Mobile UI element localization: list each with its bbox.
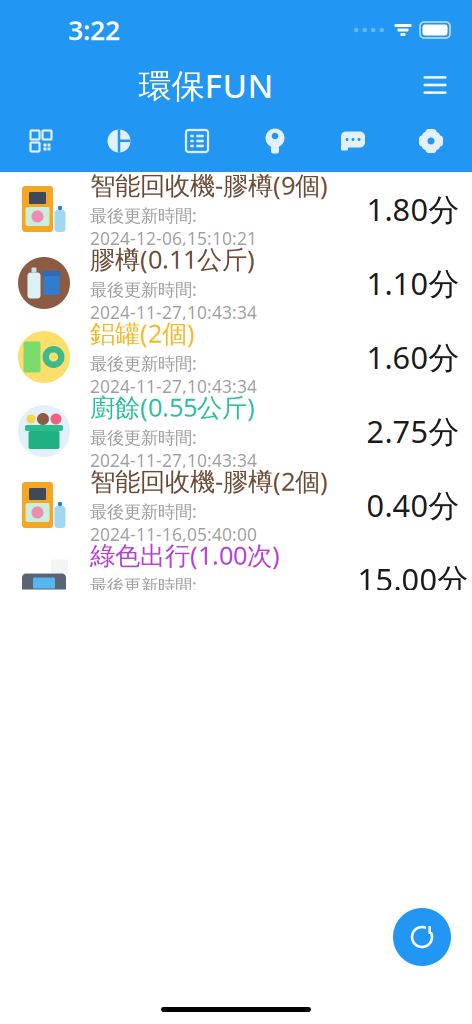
staticText: 綠色出行(1.00次) <box>90 538 280 572</box>
staticText: 鋁罐(2個) <box>90 316 195 350</box>
staticText: 3:22 <box>68 12 120 48</box>
staticText: 廚餘(0.55公斤) <box>90 390 255 424</box>
staticText: 2.75分 <box>366 411 459 451</box>
button[interactable]: Menu <box>412 62 458 108</box>
staticText: 智能回收機-膠樽(9個) <box>90 168 328 202</box>
button[interactable]: Locations <box>236 118 314 164</box>
button[interactable]: Messages <box>314 118 392 164</box>
staticText: 最後更新時間:2024-11-16,05:40:00 <box>90 500 257 546</box>
button[interactable]: 智能回收機-膠樽(2個) <box>0 468 472 542</box>
button[interactable]: Records <box>158 118 236 164</box>
button[interactable]: 廚餘(0.55公斤) <box>0 394 472 468</box>
staticText: 最後更新時間:2024-11-27,10:43:34 <box>90 278 257 324</box>
staticText: 最後更新時間:2024-11-27,10:43:34 <box>90 426 257 472</box>
button[interactable]: Statistics <box>80 118 158 164</box>
staticText: 膠樽(0.11公斤) <box>90 242 255 276</box>
button[interactable]: 膠樽(0.11公斤) <box>0 246 472 320</box>
button[interactable]: 紙(0.97公斤) <box>0 838 472 912</box>
button[interactable]: 智能回收機-膠樽(9個) <box>0 172 472 246</box>
staticText: 0.40分 <box>366 485 459 525</box>
staticText: 1.10分 <box>366 263 459 303</box>
button[interactable]: Settings <box>392 118 470 164</box>
staticText: 1.80分 <box>366 189 459 229</box>
staticText: 1.60分 <box>366 337 459 377</box>
button[interactable]: 綠色出行(1.00次) <box>0 542 472 616</box>
button[interactable]: QR code scanner <box>2 118 80 164</box>
staticText: 最後更新時間:2024-12-06,15:10:21 <box>90 204 257 250</box>
staticText: 智能回收機-膠樽(2個) <box>90 464 328 498</box>
button[interactable]: Refresh <box>393 908 451 966</box>
staticText: 15.00分 <box>357 559 468 599</box>
staticText: 最後更新時間:2024-11-27,10:43:34 <box>90 352 257 398</box>
button[interactable]: 鋁罐(2個) <box>0 320 472 394</box>
staticText: 2024-12-27 15:30:01 <box>191 924 438 958</box>
staticText: 環保FUN <box>138 63 273 107</box>
staticText: 最後更新時間:2024-11-13,14:21:42 <box>90 574 257 620</box>
